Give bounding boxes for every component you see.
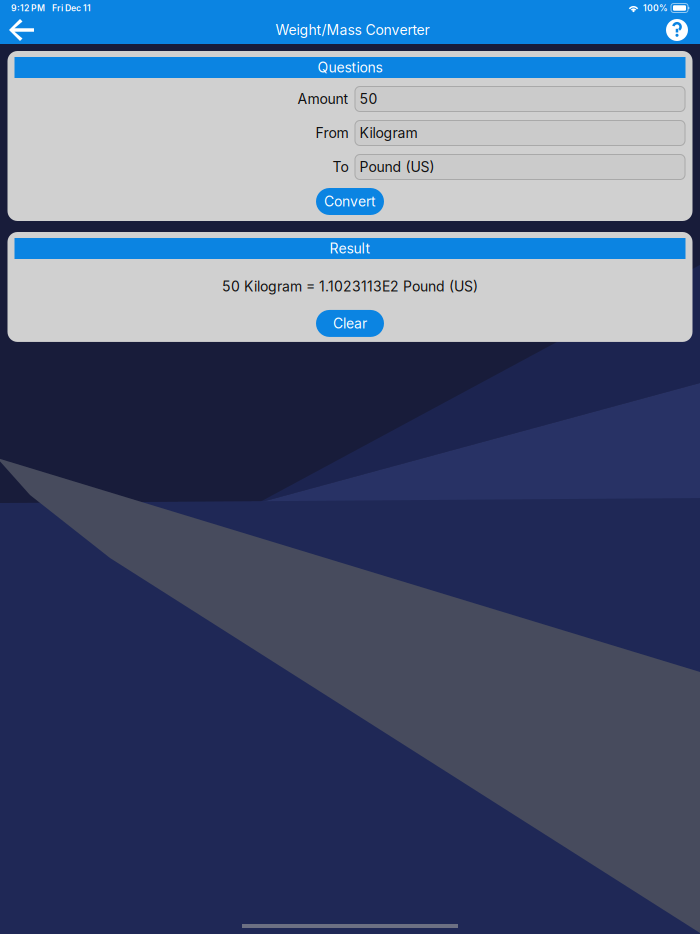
staticText: Pound (US): [359, 158, 434, 175]
staticText: Amount: [297, 90, 348, 107]
staticText: Convert: [324, 193, 376, 210]
staticText: Weight/Mass Converter: [275, 21, 429, 38]
button[interactable]: Help: [664, 17, 690, 43]
staticText: 9:12 PM: [11, 3, 45, 13]
button[interactable]: Convert: [316, 188, 384, 215]
staticText: 50: [359, 90, 377, 107]
staticText: Result: [329, 240, 370, 257]
staticText: From: [315, 124, 348, 141]
staticText: Clear: [333, 315, 367, 332]
staticText: Questions: [317, 59, 382, 76]
staticText: 50 Kilogram = 1.1023113E2 Pound (US): [222, 278, 478, 295]
staticText: To: [332, 158, 348, 175]
button[interactable]: Back: [2, 16, 41, 44]
staticText: Kilogram: [359, 124, 417, 141]
staticText: 100%: [643, 3, 668, 13]
button[interactable]: 50: [354, 86, 685, 112]
button[interactable]: Kilogram: [354, 120, 685, 146]
button[interactable]: Pound (US): [354, 154, 685, 180]
staticText: Fri Dec 11: [52, 3, 91, 13]
button[interactable]: Clear: [316, 310, 384, 337]
